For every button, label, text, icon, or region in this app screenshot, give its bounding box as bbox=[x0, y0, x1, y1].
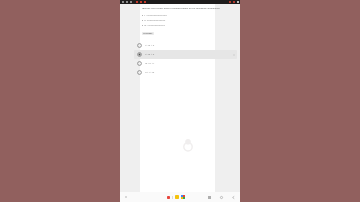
staticText: II > I > III bbox=[145, 71, 155, 74]
button[interactable]: II > I > III bbox=[134, 68, 237, 77]
staticText: II. CH3CH2OCH2CH3 bbox=[144, 19, 166, 22]
staticText: I. CH3CH2CH2CH2OH bbox=[144, 14, 167, 17]
button[interactable]: App shortcut bbox=[167, 196, 170, 199]
staticText: III. CH3CH2CH2CHO bbox=[144, 24, 165, 27]
staticText: Identify the correct order of boiling po… bbox=[142, 7, 221, 10]
button[interactable]: I > III > II bbox=[134, 41, 237, 50]
button[interactable]: III > II > I bbox=[134, 59, 237, 68]
staticText: I > III > II bbox=[145, 44, 155, 47]
staticText: ANSWERS bbox=[143, 32, 153, 35]
staticText: III > II > I bbox=[145, 62, 155, 65]
button[interactable]: Back bbox=[230, 194, 236, 200]
button[interactable]: Home bbox=[218, 194, 224, 200]
button[interactable]: App shortcut bbox=[181, 195, 185, 199]
button[interactable]: App shortcut bbox=[175, 195, 179, 199]
button[interactable]: I > III > II bbox=[134, 50, 237, 59]
button[interactable]: Recent apps bbox=[206, 194, 212, 200]
staticText: I > III > II bbox=[145, 53, 155, 56]
